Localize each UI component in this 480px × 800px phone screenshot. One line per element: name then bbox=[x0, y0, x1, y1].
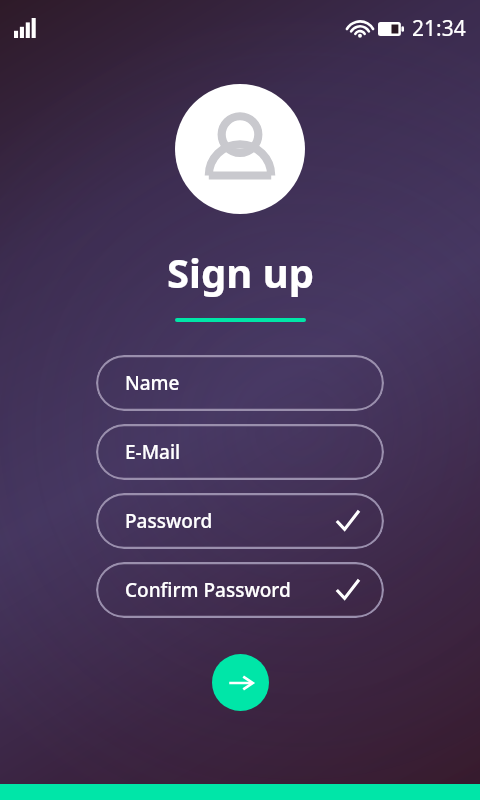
button[interactable]: Confirm Password bbox=[96, 562, 384, 618]
staticText: E-Mail bbox=[125, 439, 181, 465]
staticText: Password bbox=[125, 508, 213, 534]
button[interactable]: Name bbox=[96, 355, 384, 411]
button[interactable]: Password bbox=[96, 493, 384, 549]
staticText: Sign up bbox=[167, 245, 314, 299]
staticText: 21:34 bbox=[412, 14, 466, 43]
button[interactable]: E-Mail bbox=[96, 424, 384, 480]
button[interactable]: Continue bbox=[212, 654, 269, 711]
staticText: Confirm Password bbox=[125, 577, 291, 603]
staticText: Name bbox=[125, 370, 180, 396]
